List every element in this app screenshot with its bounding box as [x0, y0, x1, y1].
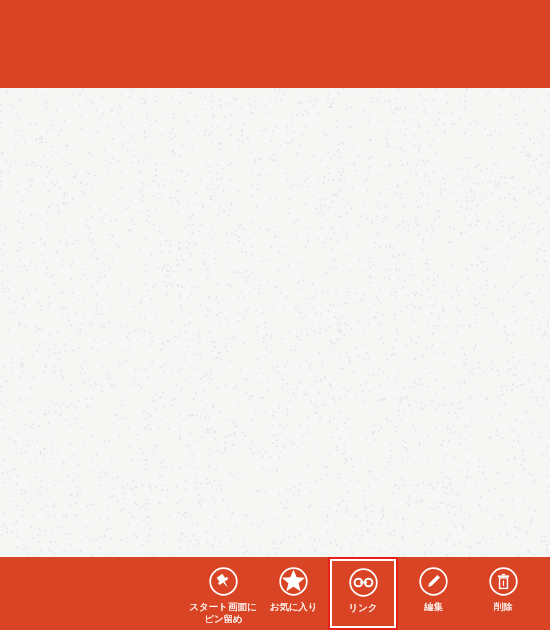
staticText: 削除 — [494, 601, 513, 613]
button[interactable]: スタート画面にピン留め — [188, 557, 258, 630]
button[interactable]: お気に入り — [258, 557, 328, 630]
button[interactable]: リンク — [332, 561, 394, 626]
staticText: お気に入り — [269, 601, 318, 613]
button[interactable]: 編集 — [398, 557, 468, 630]
staticText: スタート画面に — [189, 601, 257, 613]
button[interactable]: 削除 — [468, 557, 538, 630]
staticText: ピン留め — [204, 613, 243, 625]
staticText: リンク — [348, 602, 378, 614]
staticText: 編集 — [424, 601, 443, 613]
